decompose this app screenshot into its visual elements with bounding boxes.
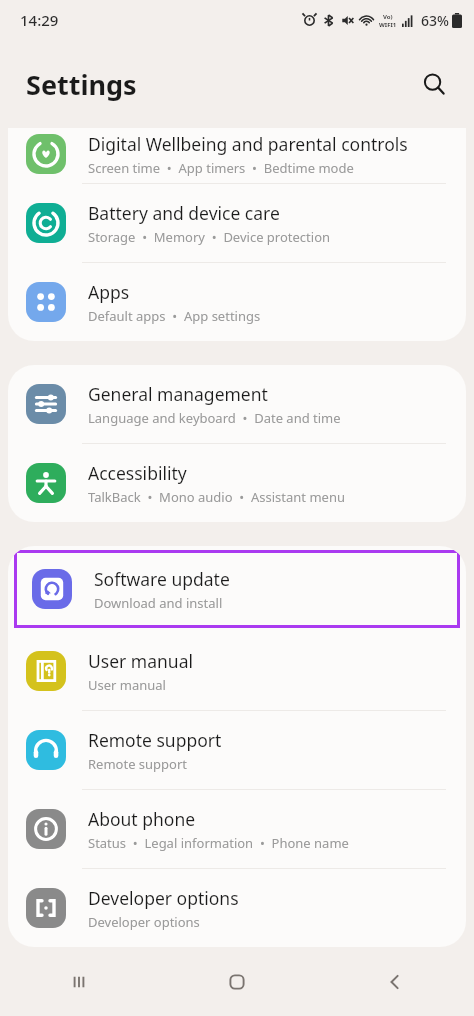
staticText: Settings [26,66,137,103]
button[interactable]: Recent apps [0,947,158,1016]
button[interactable]: Battery and device care [8,184,466,262]
button[interactable]: Software update [14,550,460,628]
staticText: Developer options [88,913,200,931]
button[interactable]: Home [158,947,316,1016]
staticText: Screen time • App timers • Bedtime mode [88,159,354,177]
staticText: Status • Legal information • Phone name [88,834,349,852]
staticText: Download and install [94,594,223,612]
button[interactable]: User manual [8,632,466,710]
staticText: User manual [88,649,193,673]
staticText: 14:29 [20,10,59,30]
button[interactable]: Back [316,947,474,1016]
staticText: Developer options [88,886,239,910]
button[interactable]: Remote support [8,711,466,789]
button[interactable]: Apps [8,263,466,341]
button[interactable]: Digital Wellbeing and parental controls [8,128,466,183]
staticText: About phone [88,807,196,831]
button[interactable]: General management [8,365,466,443]
staticText: General management [88,382,268,406]
staticText: Default apps • App settings [88,307,261,325]
staticText: User manual [88,676,166,694]
staticText: Digital Wellbeing and parental controls [88,132,408,156]
button[interactable]: Search [412,62,456,106]
button[interactable]: Accessibility [8,444,466,522]
staticText: Vo) [383,13,393,21]
staticText: Language and keyboard • Date and time [88,409,341,427]
staticText: Battery and device care [88,201,280,225]
staticText: 63% [421,11,449,30]
staticText: WIFI1 [379,21,397,29]
button[interactable]: About phone [8,790,466,868]
staticText: Accessibility [88,461,187,485]
button[interactable]: Developer options [8,869,466,947]
staticText: Apps [88,280,130,304]
staticText: Remote support [88,755,188,773]
staticText: TalkBack • Mono audio • Assistant menu [88,488,345,506]
staticText: Software update [94,567,230,591]
staticText: Remote support [88,728,222,752]
staticText: Storage • Memory • Device protection [88,228,331,246]
